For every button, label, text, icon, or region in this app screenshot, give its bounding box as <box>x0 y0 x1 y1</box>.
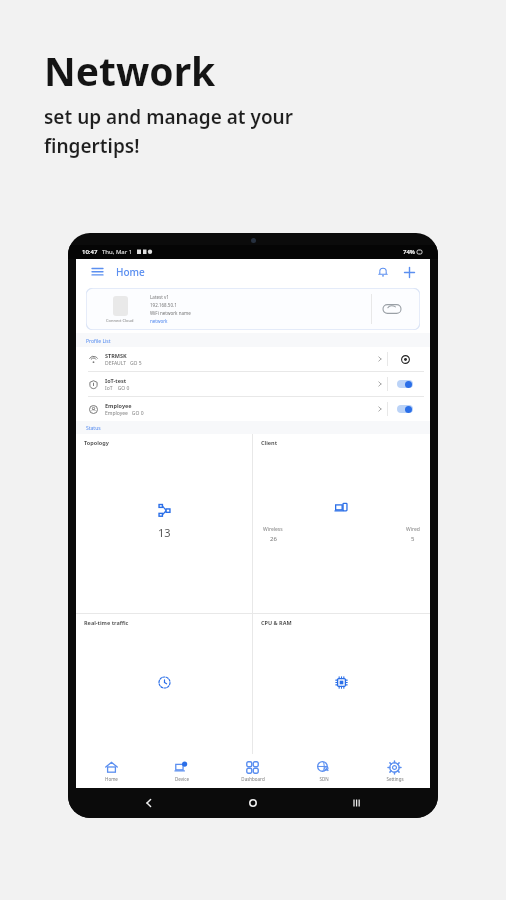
button[interactable]: Power STRMSK <box>399 353 411 365</box>
button[interactable]: Recent apps <box>346 792 368 814</box>
button[interactable]: Topology <box>76 434 252 613</box>
staticText: WiFi network name <box>150 310 191 316</box>
staticText: 74% <box>403 248 415 256</box>
button[interactable]: Settings <box>359 754 430 788</box>
staticText: Network <box>44 44 216 97</box>
button[interactable]: Dashboard <box>217 754 288 788</box>
button[interactable]: Open STRMSK <box>373 352 387 366</box>
staticText: Settings <box>386 776 404 782</box>
button[interactable]: Notifications <box>374 263 392 281</box>
staticText: IoT GO 0 <box>105 385 130 392</box>
staticText: CPU & RAM <box>261 619 292 626</box>
staticText: Employee GO 0 <box>105 410 144 417</box>
button[interactable]: Add <box>400 263 418 281</box>
staticText: SDN <box>319 776 329 782</box>
button[interactable]: Client <box>253 434 430 613</box>
button[interactable]: Open Employee <box>373 402 387 416</box>
staticText: 26 <box>270 535 277 543</box>
staticText: Wired <box>406 526 420 533</box>
staticText: network <box>150 318 168 324</box>
staticText: Employee <box>105 402 132 409</box>
staticText: Home <box>105 776 118 782</box>
staticText: Connect Cloud <box>106 318 134 323</box>
button[interactable]: Home <box>116 265 145 279</box>
button[interactable]: STRMSK <box>76 347 430 371</box>
button[interactable]: Toggle Employee <box>397 405 413 413</box>
staticText: Wireless <box>263 526 283 533</box>
button[interactable]: IoT-test <box>76 372 430 396</box>
button[interactable]: Menu <box>88 263 106 281</box>
staticText: fingertips! <box>44 133 140 159</box>
staticText: IoT-test <box>105 377 127 384</box>
staticText: Status <box>86 425 101 432</box>
button[interactable]: Home <box>76 754 146 788</box>
staticText: 192.168.50.1 <box>150 302 177 308</box>
staticText: Profile List <box>86 338 111 345</box>
button[interactable]: Device <box>146 754 217 788</box>
staticText: set up and manage at your <box>44 104 293 130</box>
staticText: Device <box>175 776 189 782</box>
staticText: Latest v1 <box>150 294 169 300</box>
staticText: DEFAULT GO 5 <box>105 360 142 367</box>
button[interactable]: SDN <box>288 754 359 788</box>
staticText: Topology <box>84 439 109 446</box>
button[interactable]: Employee <box>76 397 430 421</box>
button[interactable]: Real-time traffic <box>76 614 252 754</box>
staticText: 10:47 <box>82 248 98 256</box>
staticText: 5 <box>411 535 415 543</box>
button[interactable]: Connect Cloud <box>86 288 420 330</box>
button[interactable]: Open IoT-test <box>373 377 387 391</box>
staticText: Real-time traffic <box>84 619 129 626</box>
staticText: Dashboard <box>241 776 265 782</box>
button[interactable]: Home <box>242 792 264 814</box>
staticText: 13 <box>158 525 171 540</box>
staticText: STRMSK <box>105 352 127 359</box>
button[interactable]: Toggle IoT-test <box>397 380 413 388</box>
button[interactable]: CPU & RAM <box>253 614 430 754</box>
staticText: Client <box>261 439 278 446</box>
button[interactable]: Back <box>138 792 160 814</box>
staticText: Thu, Mar 1 <box>102 248 133 256</box>
